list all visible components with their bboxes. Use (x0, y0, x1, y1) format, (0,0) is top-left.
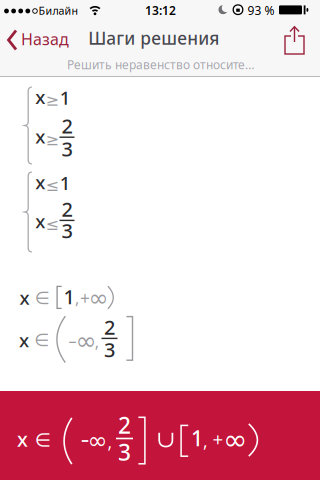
staticText: 1 (63, 283, 74, 310)
staticText: ≤ (45, 215, 58, 234)
staticText: x (35, 208, 45, 233)
button[interactable]: Share (281, 24, 307, 56)
staticText: 2 (104, 314, 115, 340)
staticText: Шаги решения (88, 26, 219, 49)
staticText: x (19, 285, 29, 310)
staticText: Назад (21, 28, 69, 50)
staticText: ∞ (88, 284, 108, 312)
staticText: x (35, 124, 45, 149)
staticText: 2 (61, 196, 72, 222)
staticText: x (35, 84, 45, 109)
staticText: – (68, 330, 76, 351)
staticText: 3 (104, 336, 115, 363)
staticText: 13:12 (145, 2, 176, 18)
staticText: + (212, 427, 223, 451)
staticText: Билайн (38, 3, 78, 18)
staticText: 2 (61, 112, 72, 139)
staticText: , (107, 430, 112, 453)
staticText: 1 (191, 424, 203, 452)
staticText: 3 (61, 135, 72, 162)
staticText: ∈ (34, 288, 49, 308)
staticText: ∞ (223, 423, 247, 456)
staticText: ∈ (34, 330, 49, 350)
staticText: ≥ (45, 91, 58, 109)
staticText: x (17, 426, 28, 452)
staticText: Решить неравенство относите… (67, 56, 254, 72)
staticText: ∈ (34, 429, 50, 451)
staticText: x (35, 169, 45, 194)
staticText: , (75, 287, 79, 309)
staticText: ≥ (45, 131, 58, 149)
staticText: + (80, 286, 90, 309)
staticText: 2 (118, 410, 131, 440)
staticText: , (95, 331, 99, 352)
staticText: 3 (61, 217, 72, 244)
staticText: ∞ (75, 327, 96, 355)
staticText: x (19, 328, 29, 352)
staticText: , (203, 429, 208, 452)
staticText: ∞ (87, 427, 107, 454)
button[interactable]: Назад (7, 26, 73, 52)
staticText: 1 (60, 170, 71, 195)
staticText: 3 (118, 437, 131, 467)
staticText: 93 % (247, 2, 274, 18)
staticText: 1 (60, 85, 71, 110)
staticText: ≤ (45, 176, 58, 195)
